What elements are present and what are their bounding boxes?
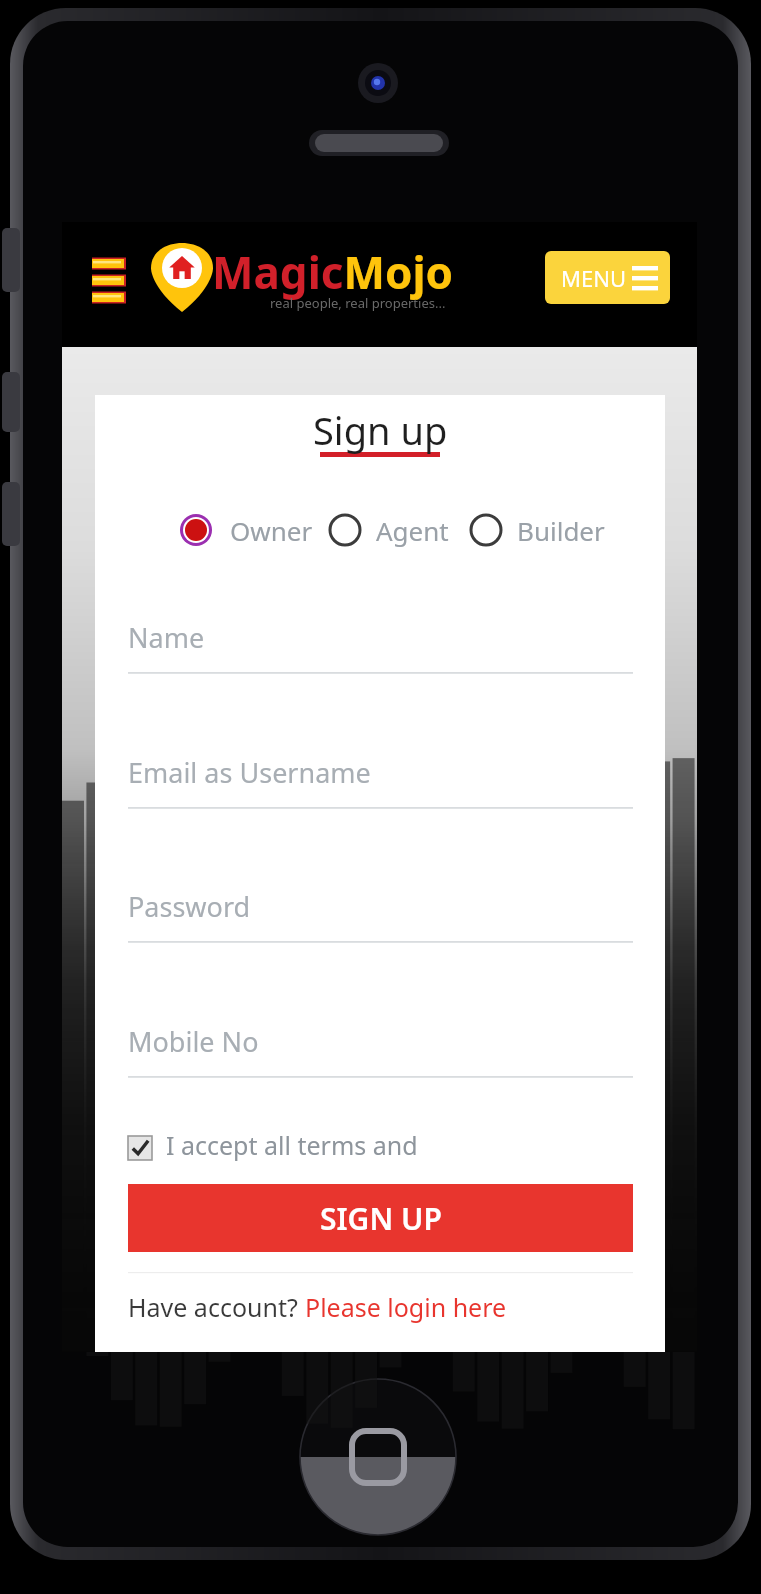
staticText: Builder: [517, 513, 605, 548]
button[interactable]: Open navigation menu: [84, 245, 134, 307]
button[interactable]: I accept all terms and conditions: [124, 1128, 544, 1170]
button[interactable]: Password: [128, 875, 633, 937]
staticText: Mobile No: [128, 1023, 259, 1060]
button[interactable]: MagicMojo: [212, 242, 454, 302]
button[interactable]: SIGN UP: [128, 1184, 633, 1252]
staticText: SIGN UP: [320, 1198, 442, 1239]
button[interactable]: Builder: [468, 506, 639, 554]
staticText: Password: [128, 888, 251, 925]
staticText: Sign up: [313, 404, 448, 456]
staticText: Please login here: [305, 1290, 507, 1324]
staticText: real people, real properties...: [270, 294, 446, 312]
button[interactable]: MENU: [545, 251, 670, 304]
button[interactable]: Mobile No: [128, 1010, 633, 1072]
staticText: MENU: [561, 263, 626, 293]
staticText: Name: [128, 619, 205, 656]
staticText: MagicMojo: [212, 242, 454, 302]
staticText: Owner: [230, 513, 313, 548]
staticText: Agent: [376, 513, 449, 548]
button[interactable]: Owner: [178, 506, 320, 554]
staticText: Have account?: [128, 1290, 305, 1324]
button[interactable]: Agent: [328, 506, 466, 554]
staticText: Email as Username: [128, 754, 371, 791]
staticText: I accept all terms and conditions: [166, 1128, 544, 1170]
button[interactable]: Email as Username: [128, 741, 633, 803]
button[interactable]: Name: [128, 606, 633, 668]
button[interactable]: Please login here: [305, 1290, 507, 1324]
